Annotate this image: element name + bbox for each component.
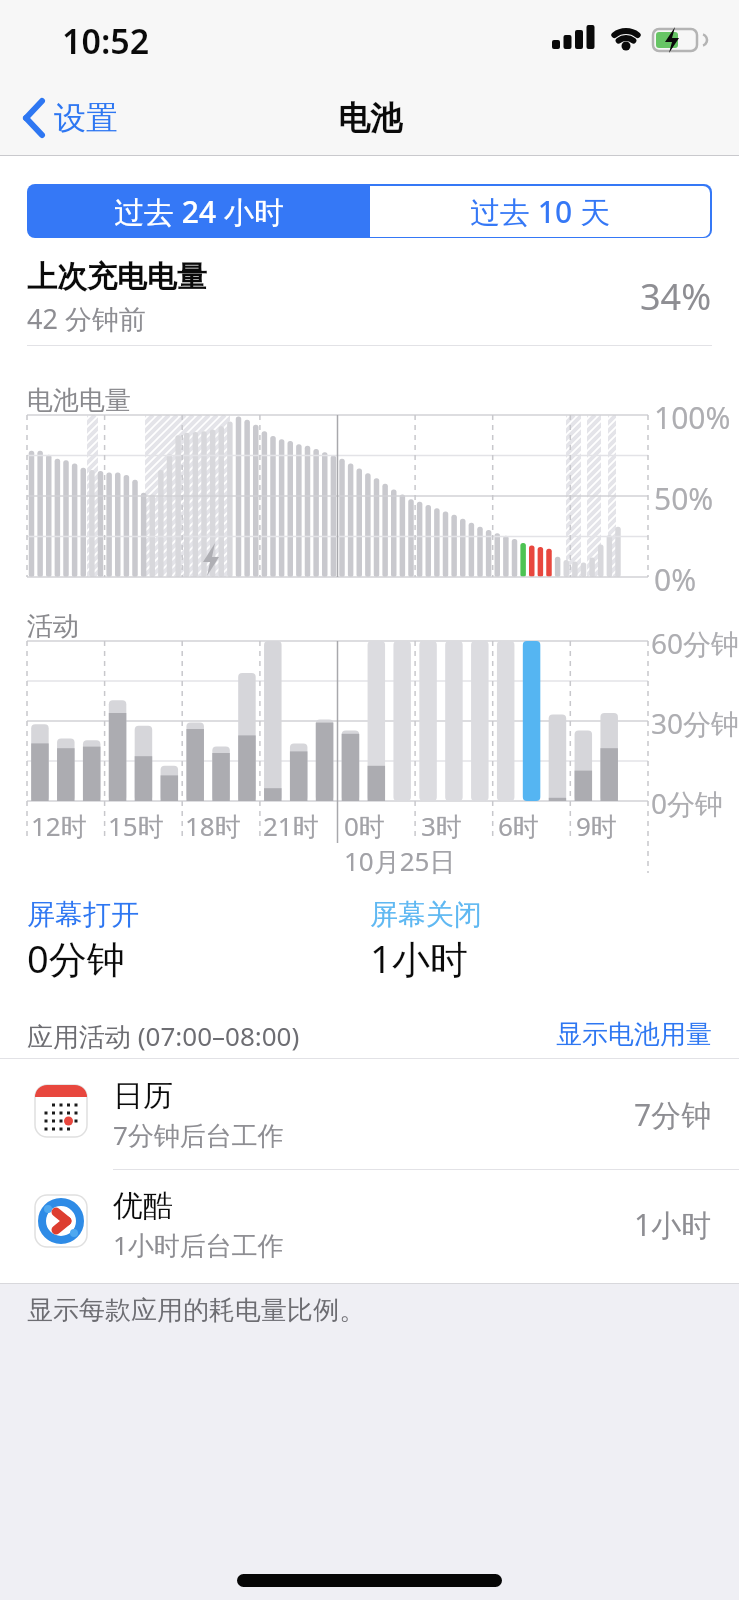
staticText: 活动 [27, 610, 79, 643]
staticText: 0时 [344, 808, 385, 844]
staticText: 0分钟 [651, 784, 724, 822]
staticText: 12时 [31, 808, 87, 844]
staticText: 0% [654, 559, 697, 600]
button[interactable]: 过去 10 天 [370, 186, 710, 237]
staticText: 60分钟 [651, 624, 739, 662]
staticText: 1小时 [634, 1204, 712, 1245]
staticText: 50% [654, 478, 714, 519]
staticText: 15时 [108, 808, 164, 844]
staticText: 1小时后台工作 [113, 1227, 284, 1263]
staticText: 100% [654, 397, 731, 438]
staticText: 过去 24 小时 [114, 191, 284, 232]
staticText: 应用活动 (07:00–08:00) [27, 1018, 300, 1054]
staticText: 42 分钟前 [27, 300, 146, 337]
button[interactable]: 过去 24 小时 [27, 184, 370, 238]
staticText: 7分钟后台工作 [113, 1117, 284, 1153]
staticText: 电池电量 [27, 384, 131, 417]
button[interactable]: 显示电池用量 [556, 1018, 739, 1051]
staticText: 上次充电电量 [27, 258, 207, 296]
staticText: 屏幕关闭 [370, 897, 482, 932]
button[interactable]: 日历 [0, 1059, 739, 1169]
staticText: 18时 [185, 808, 241, 844]
staticText: 3时 [421, 808, 462, 844]
staticText: 6时 [498, 808, 539, 844]
staticText: 日历 [113, 1077, 173, 1115]
staticText: 10月25日 [344, 843, 456, 879]
staticText: 屏幕打开 [27, 897, 139, 932]
button[interactable]: 优酷 [0, 1169, 739, 1279]
staticText: 34% [640, 272, 712, 321]
staticText: 0分钟 [27, 932, 125, 984]
staticText: 7分钟 [634, 1094, 712, 1135]
staticText: 优酷 [113, 1187, 173, 1225]
staticText: 电池 [338, 98, 402, 138]
staticText: 显示每款应用的耗电量比例。 [27, 1294, 365, 1327]
staticText: 21时 [263, 808, 319, 844]
staticText: 设置 [54, 98, 118, 138]
staticText: 过去 10 天 [470, 191, 610, 232]
staticText: 9时 [576, 808, 617, 844]
staticText: 30分钟 [651, 704, 739, 742]
staticText: 显示电池用量 [556, 1018, 712, 1051]
button[interactable]: 设置 [16, 92, 124, 144]
staticText: 1小时 [370, 932, 468, 984]
staticText: 10:52 [62, 18, 150, 64]
